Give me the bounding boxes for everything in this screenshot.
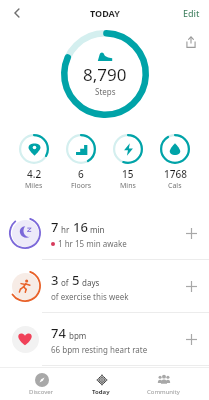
staticText: Discover: [29, 388, 54, 396]
button[interactable]: 8,790: [61, 30, 149, 118]
button[interactable]: Back: [6, 2, 28, 24]
button[interactable]: Today: [84, 370, 118, 398]
staticText: hr: [61, 224, 70, 235]
button[interactable]: Edit: [180, 5, 203, 21]
staticText: of: [61, 277, 69, 288]
staticText: bpm: [69, 330, 87, 341]
staticText: Miles: [25, 181, 43, 191]
button[interactable]: 1768: [158, 132, 192, 193]
staticText: 3: [51, 271, 59, 289]
staticText: 8,790: [83, 63, 127, 86]
staticText: Edit: [183, 7, 200, 19]
staticText: of exercise this week: [51, 291, 129, 302]
staticText: 7: [51, 218, 59, 236]
button[interactable]: 15: [111, 132, 145, 193]
staticText: Cals: [168, 181, 182, 191]
button[interactable]: Add: [179, 221, 203, 245]
staticText: Floors: [71, 181, 92, 191]
button[interactable]: Community: [139, 370, 188, 398]
staticText: 74: [51, 324, 66, 342]
staticText: Steps: [95, 86, 116, 97]
button[interactable]: 7: [0, 207, 209, 259]
staticText: TODAY: [90, 7, 120, 19]
staticText: Community: [147, 388, 180, 396]
staticText: 66 bpm resting heart rate: [51, 344, 148, 355]
button[interactable]: Discover: [21, 370, 62, 398]
staticText: 6: [78, 167, 84, 181]
staticText: Mins: [120, 181, 136, 191]
staticText: 5: [72, 271, 80, 289]
staticText: days: [82, 277, 100, 288]
button[interactable]: Share: [181, 32, 201, 52]
staticText: 1768: [164, 167, 187, 181]
button[interactable]: Add: [179, 274, 203, 298]
staticText: 1 hr 15 min awake: [58, 238, 127, 249]
staticText: 15: [122, 167, 134, 181]
staticText: 4.2: [27, 167, 42, 181]
button[interactable]: Add: [179, 327, 203, 351]
staticText: 16: [73, 218, 88, 236]
button[interactable]: 3: [0, 260, 209, 312]
button[interactable]: 74: [0, 313, 209, 365]
button[interactable]: 4.2: [17, 132, 51, 193]
staticText: Today: [92, 388, 110, 396]
staticText: min: [90, 224, 105, 235]
button[interactable]: 6: [64, 132, 98, 193]
